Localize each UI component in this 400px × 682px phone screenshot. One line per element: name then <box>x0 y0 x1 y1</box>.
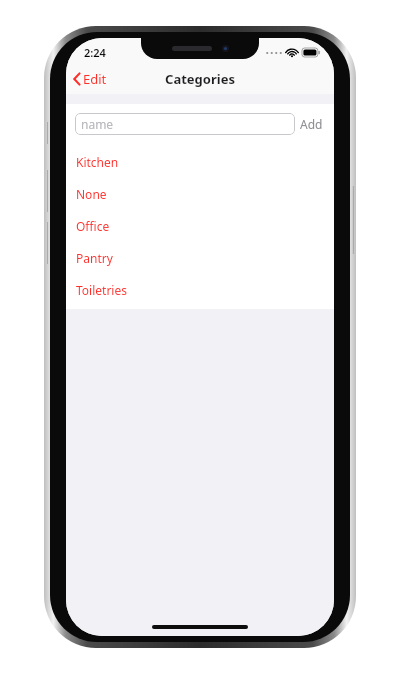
staticText: name <box>81 116 114 132</box>
button[interactable]: Add <box>295 112 328 136</box>
staticText: Add <box>300 116 323 132</box>
button[interactable]: None <box>66 178 334 210</box>
staticText: Pantry <box>76 250 113 266</box>
staticText: 2:24 <box>84 45 106 60</box>
staticText: Categories <box>165 70 235 88</box>
staticText: Office <box>76 218 110 234</box>
staticText: None <box>76 186 107 202</box>
staticText: Kitchen <box>76 154 119 170</box>
button[interactable]: Kitchen <box>66 146 334 178</box>
button[interactable]: Toiletries <box>66 274 334 306</box>
staticText: Edit <box>83 70 107 88</box>
button[interactable]: Office <box>66 210 334 242</box>
staticText: Toiletries <box>76 282 127 298</box>
button[interactable]: name <box>75 113 295 135</box>
button[interactable]: Pantry <box>66 242 334 274</box>
button[interactable]: Edit <box>66 66 115 92</box>
